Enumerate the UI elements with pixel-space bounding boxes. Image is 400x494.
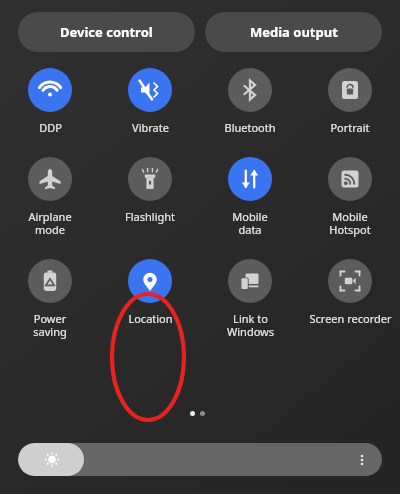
staticText: DDP [39,120,62,135]
button[interactable]: Bluetooth [200,68,300,135]
staticText: Screen recorder [309,311,392,326]
staticText: Mobile Hotspot [329,209,371,237]
staticText: Media output [250,23,338,41]
button[interactable]: Mobile Hotspot [300,157,400,237]
button[interactable]: Portrait [300,68,400,135]
staticText: Vibrate [132,120,169,135]
button[interactable]: DDP [0,68,100,135]
button[interactable]: Screen recorder [300,259,400,326]
button[interactable]: Device control [18,12,195,52]
staticText: Location [128,311,173,326]
staticText: Link to Windows [227,311,274,339]
button[interactable]: Power saving [0,259,100,339]
staticText: Device control [60,23,153,41]
staticText: Portrait [330,120,370,135]
button[interactable]: Media output [205,12,382,52]
staticText: Airplane mode [28,209,72,237]
staticText: Flashlight [125,209,175,224]
button[interactable]: Flashlight [100,157,200,224]
button[interactable]: Airplane mode [0,157,100,237]
button[interactable]: Location [100,259,200,326]
button[interactable]: Link to Windows [200,259,300,339]
staticText: Mobile data [232,209,268,237]
button[interactable]: Brightness [18,443,382,476]
staticText: Bluetooth [224,120,276,135]
button[interactable]: Vibrate [100,68,200,135]
button[interactable]: Mobile data [200,157,300,237]
staticText: Power saving [33,311,67,339]
